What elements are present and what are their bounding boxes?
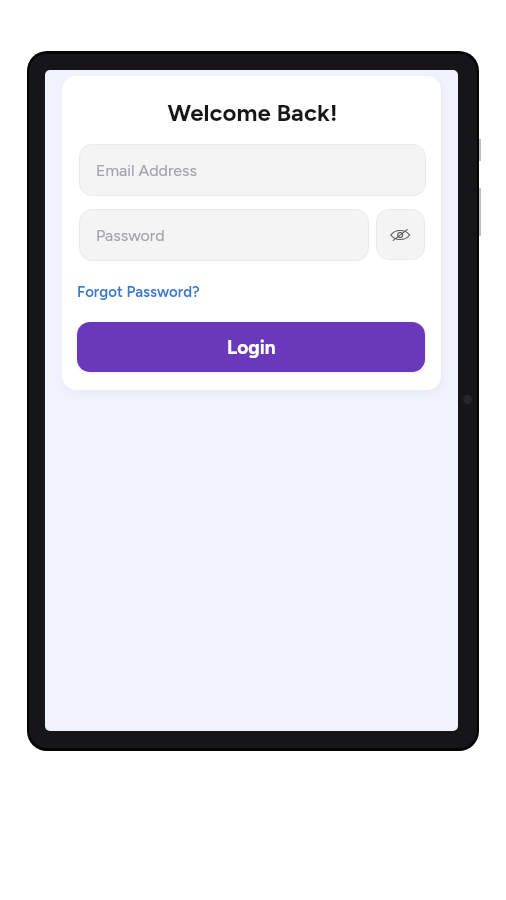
staticText: Forgot Password? bbox=[77, 283, 200, 301]
button[interactable]: Login bbox=[77, 322, 425, 372]
staticText: Email Address bbox=[96, 161, 197, 180]
button[interactable]: Forgot Password? bbox=[77, 283, 200, 301]
button[interactable]: Email Address bbox=[79, 144, 426, 196]
button[interactable]: Password bbox=[79, 209, 369, 261]
staticText: Password bbox=[96, 226, 165, 245]
staticText: Login bbox=[227, 336, 276, 359]
button[interactable]: Show password bbox=[376, 209, 425, 260]
staticText: Welcome Back! bbox=[63, 98, 441, 127]
